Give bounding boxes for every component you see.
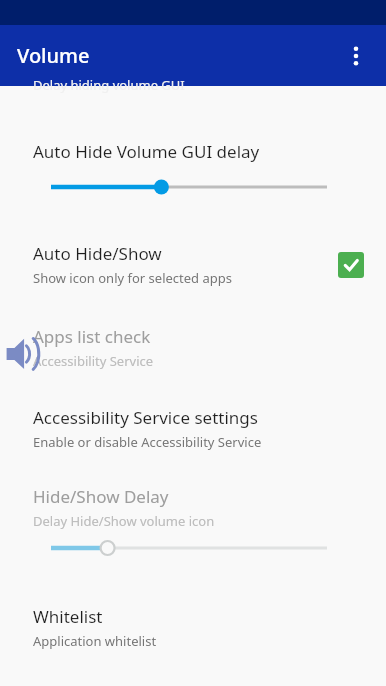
- staticText: Enable or disable Accessibility Service: [33, 433, 262, 451]
- button[interactable]: Apps list check: [0, 321, 386, 374]
- staticText: Accessibility Service: [33, 352, 154, 370]
- staticText: Delay Hide/Show volume icon: [33, 512, 215, 530]
- staticText: Apps list check: [33, 325, 151, 348]
- button[interactable]: Accessibility Service settings: [0, 402, 386, 455]
- staticText: Show icon only for selected apps: [33, 269, 232, 287]
- button[interactable]: Volume: [2, 330, 48, 376]
- button[interactable]: More options: [336, 36, 376, 76]
- button[interactable]: Hide/Show Delay: [0, 481, 386, 563]
- other: Auto Hide/Show enabled: [338, 252, 364, 278]
- staticText: Auto Hide Volume GUI delay: [33, 140, 260, 163]
- staticText: Application whitelist: [33, 632, 157, 650]
- staticText: Hide/Show Delay: [33, 485, 169, 508]
- staticText: Volume: [17, 42, 90, 69]
- staticText: Auto Hide/Show: [33, 242, 162, 265]
- button[interactable]: Auto Hide Volume GUI delay: [0, 104, 386, 210]
- staticText: Delay hiding volume GUI: [33, 76, 185, 94]
- staticText: Accessibility Service settings: [33, 406, 258, 429]
- staticText: Whitelist: [33, 605, 103, 628]
- button[interactable]: [51, 537, 327, 559]
- button[interactable]: Auto Hide/Show: [0, 236, 386, 293]
- button[interactable]: Whitelist: [0, 601, 386, 654]
- button[interactable]: [51, 176, 327, 198]
